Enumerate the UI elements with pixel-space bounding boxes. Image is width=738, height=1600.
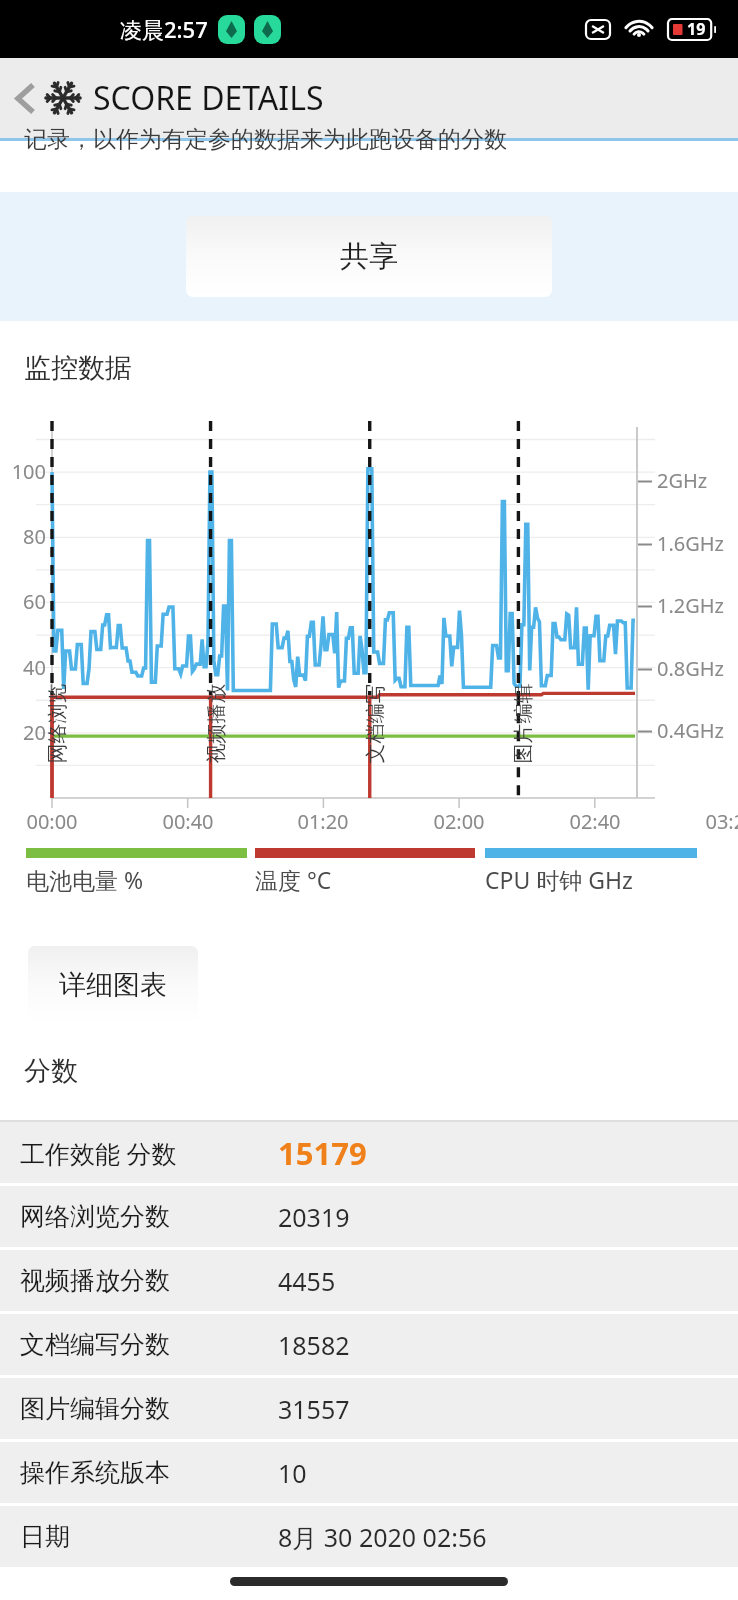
staticText: 网络浏览 bbox=[44, 669, 69, 763]
staticText: 工作效能 分数 bbox=[20, 1136, 278, 1170]
staticText: 图片编辑分数 bbox=[20, 1393, 278, 1424]
staticText: 电池电量 % bbox=[26, 864, 144, 895]
button[interactable]: 日期 bbox=[0, 1506, 738, 1567]
button[interactable]: 文档编写分数 bbox=[0, 1314, 738, 1375]
staticText: 0.4GHz bbox=[657, 717, 725, 744]
staticText: 80 bbox=[2, 523, 46, 550]
staticText: 00:00 bbox=[8, 808, 96, 835]
staticText: 记录，以作为有定参的数据来为此跑设备的分数 bbox=[24, 125, 507, 154]
staticText: CPU 时钟 GHz bbox=[485, 864, 633, 895]
staticText: 共享 bbox=[340, 238, 398, 275]
staticText: 03:20 bbox=[687, 808, 738, 835]
staticText: 视频播放 bbox=[203, 669, 228, 763]
staticText: 凌晨2:57 bbox=[120, 14, 208, 44]
button[interactable]: 视频播放分数 bbox=[0, 1250, 738, 1311]
staticText: 10 bbox=[278, 1456, 307, 1490]
staticText: 监控数据 bbox=[24, 351, 132, 385]
button[interactable]: 详细图表 bbox=[28, 946, 198, 1024]
button[interactable]: 图片编辑分数 bbox=[0, 1378, 738, 1439]
staticText: 文档编写分数 bbox=[20, 1329, 278, 1360]
staticText: 操作系统版本 bbox=[20, 1457, 278, 1488]
staticText: 31557 bbox=[278, 1392, 350, 1426]
staticText: 1.6GHz bbox=[657, 530, 725, 557]
staticText: 15179 bbox=[278, 1132, 367, 1174]
staticText: 图片编辑 bbox=[510, 669, 535, 763]
button[interactable]: 共享 bbox=[186, 216, 552, 297]
staticText: 19 bbox=[687, 18, 706, 40]
staticText: 20 bbox=[2, 719, 46, 746]
staticText: 分数 bbox=[24, 1054, 78, 1088]
staticText: 0.8GHz bbox=[657, 655, 725, 682]
staticText: 20319 bbox=[278, 1200, 350, 1234]
staticText: 温度 °C bbox=[255, 864, 332, 895]
staticText: 18582 bbox=[278, 1328, 350, 1362]
button[interactable]: Back bbox=[6, 79, 44, 117]
staticText: 02:00 bbox=[415, 808, 503, 835]
staticText: 网络浏览分数 bbox=[20, 1201, 278, 1232]
staticText: SCORE DETAILS bbox=[93, 76, 324, 120]
staticText: 8月 30 2020 02:56 bbox=[278, 1520, 487, 1554]
staticText: 100 bbox=[2, 458, 46, 485]
button[interactable]: 工作效能 分数 bbox=[0, 1122, 738, 1183]
staticText: 文档编写 bbox=[362, 669, 387, 763]
staticText: 4455 bbox=[278, 1264, 336, 1298]
staticText: 1.2GHz bbox=[657, 592, 725, 619]
staticText: 00:40 bbox=[144, 808, 232, 835]
button[interactable]: 操作系统版本 bbox=[0, 1442, 738, 1503]
staticText: 日期 bbox=[20, 1521, 278, 1552]
staticText: 01:20 bbox=[279, 808, 367, 835]
button[interactable]: 网络浏览分数 bbox=[0, 1186, 738, 1247]
staticText: 02:40 bbox=[551, 808, 639, 835]
staticText: 2GHz bbox=[657, 467, 708, 494]
staticText: 40 bbox=[2, 654, 46, 681]
staticText: 视频播放分数 bbox=[20, 1265, 278, 1296]
staticText: 详细图表 bbox=[59, 968, 167, 1002]
staticText: 60 bbox=[2, 588, 46, 615]
